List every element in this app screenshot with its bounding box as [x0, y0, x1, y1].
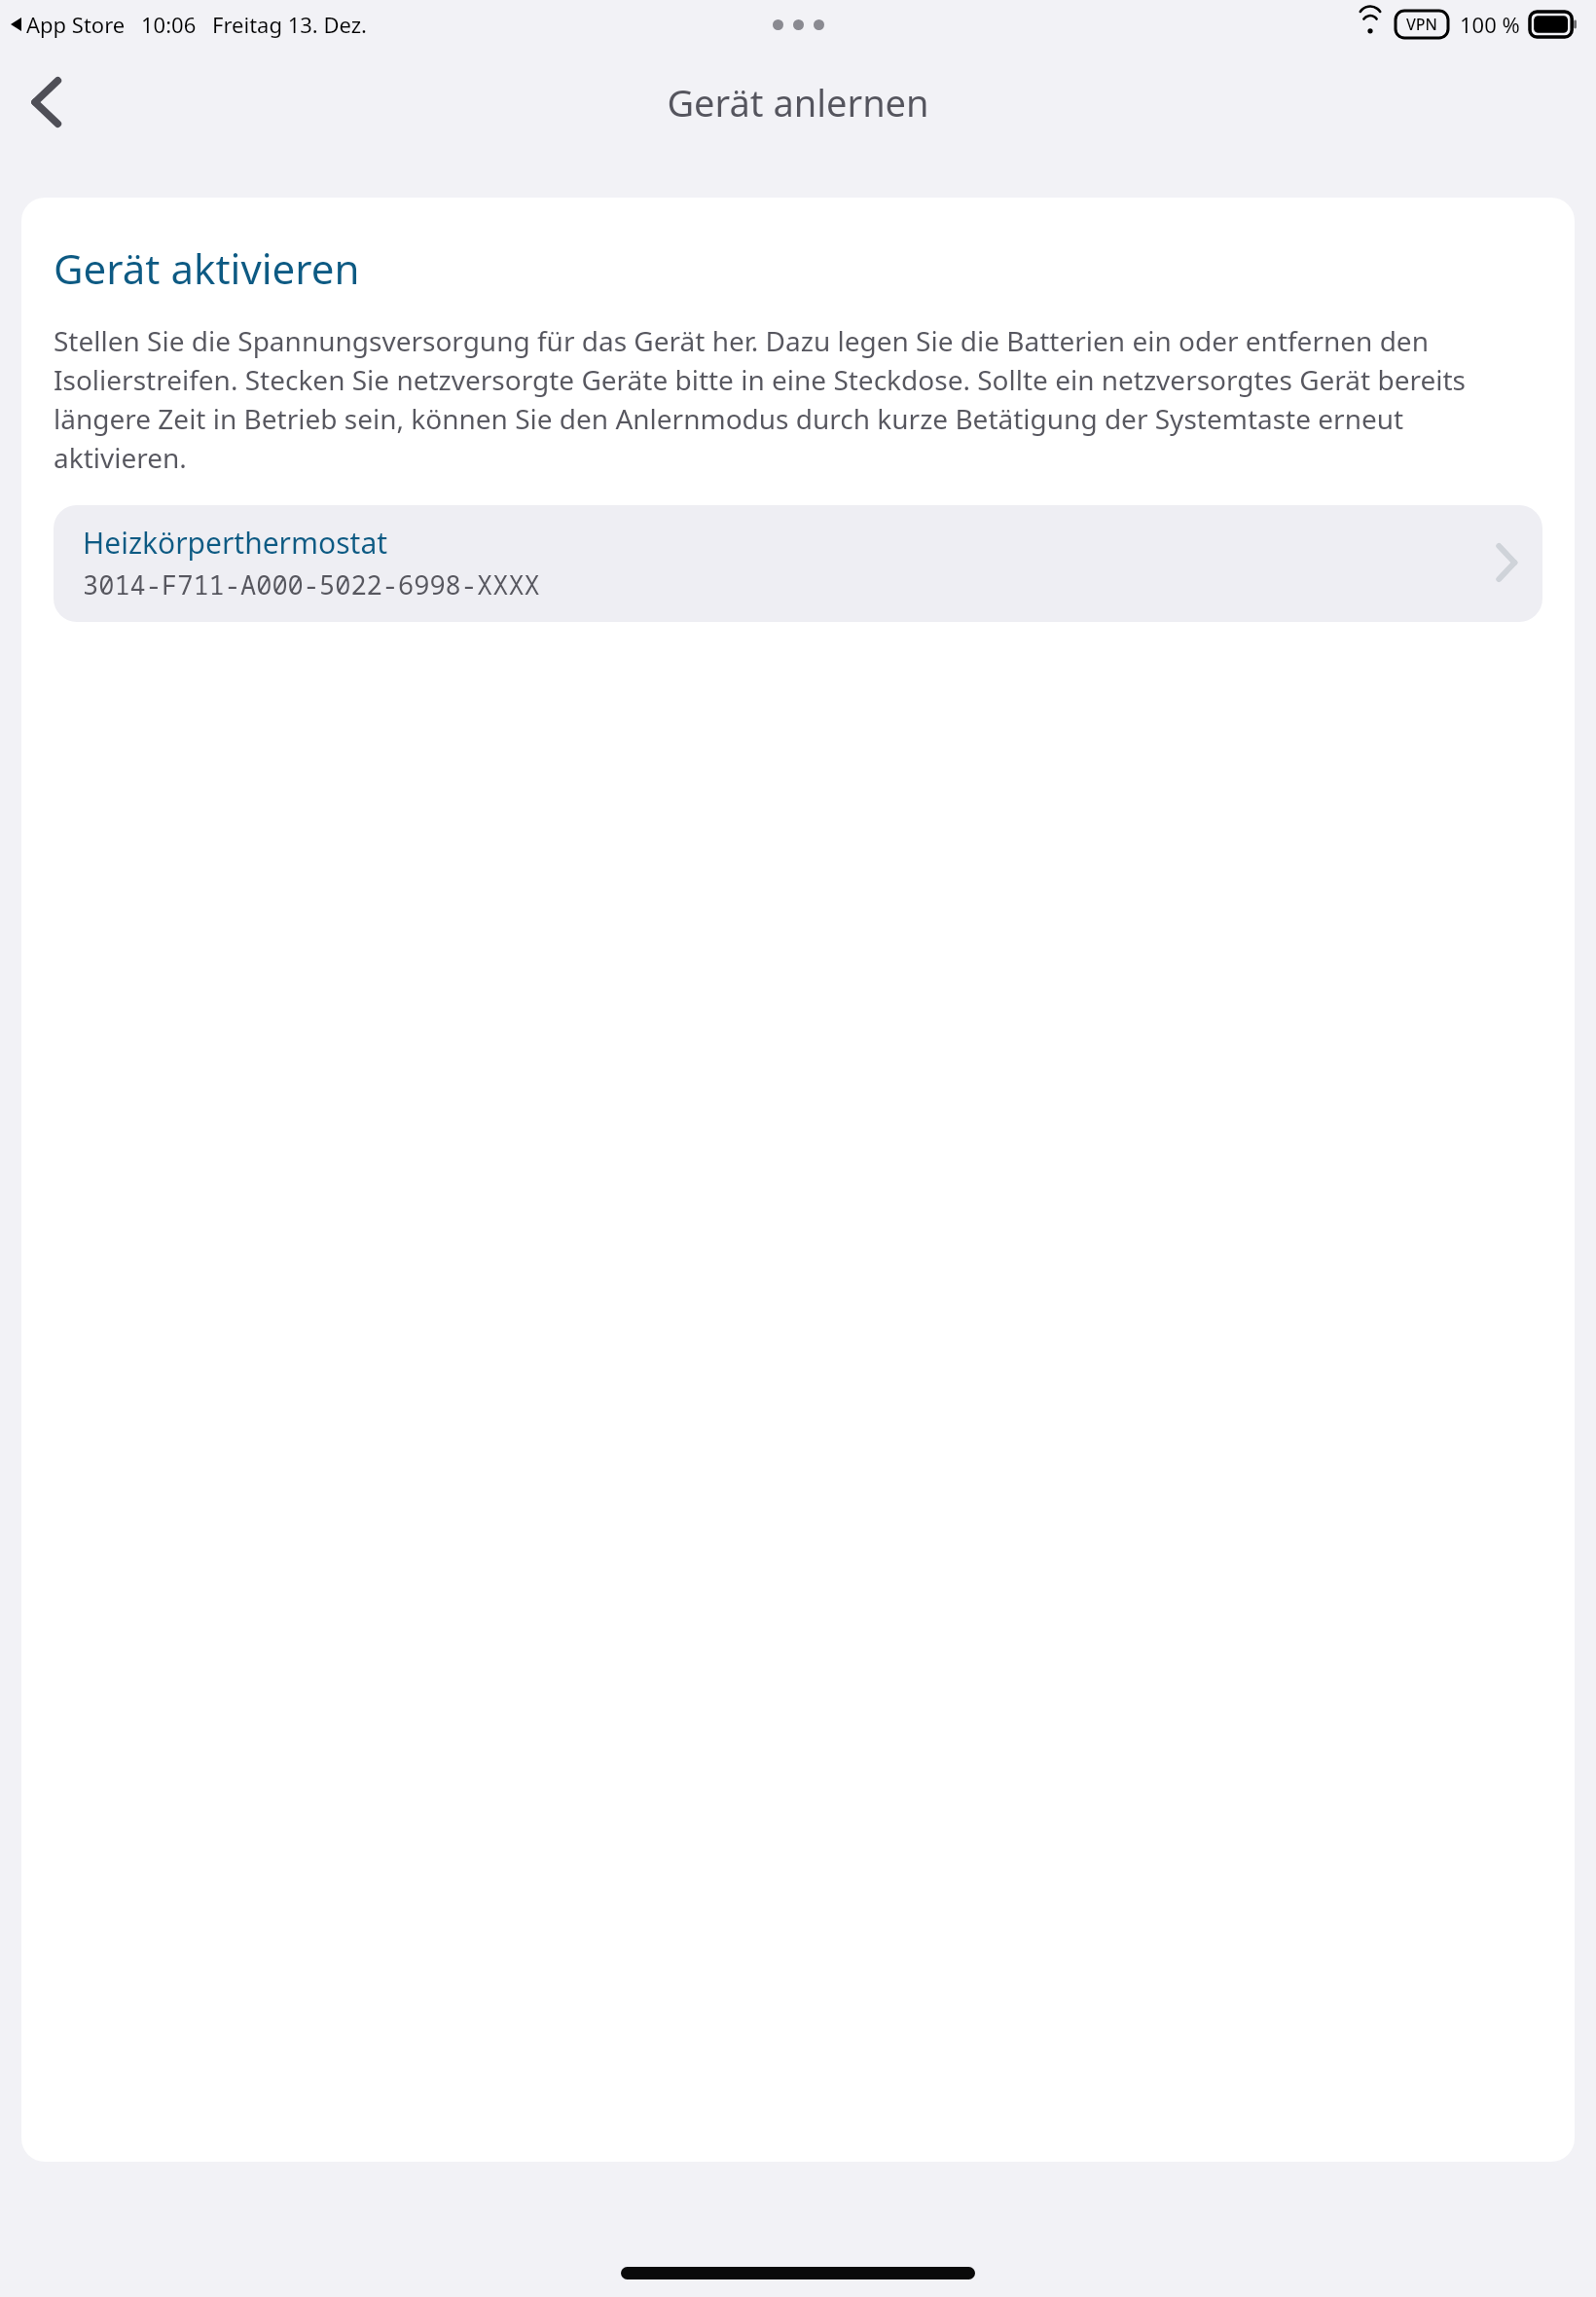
staticText: 10:06: [141, 10, 197, 39]
staticText: Heizkörperthermostat: [83, 523, 388, 563]
staticText: Gerät aktivieren: [54, 240, 360, 296]
staticText: Stellen Sie die Spannungsversorgung für …: [54, 322, 1542, 477]
staticText: Freitag 13. Dez.: [212, 10, 367, 39]
staticText: VPN: [1406, 14, 1438, 35]
staticText: 3014-F711-A000-5022-6998-XXXX: [83, 566, 540, 602]
button[interactable]: Heizkörperthermostat: [54, 505, 1542, 622]
button[interactable]: Zurück: [0, 55, 93, 149]
staticText: App Store: [26, 10, 126, 39]
staticText: 100 %: [1460, 10, 1520, 39]
staticText: Gerät anlernen: [667, 77, 929, 128]
